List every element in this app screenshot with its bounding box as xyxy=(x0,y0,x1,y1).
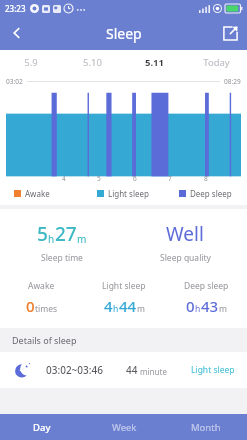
staticText: minute xyxy=(138,366,167,377)
staticText: 27 xyxy=(55,221,77,247)
staticText: Sleep time xyxy=(41,252,83,264)
staticText: Day xyxy=(33,421,51,434)
staticText: 43 xyxy=(201,296,219,316)
staticText: Light sleep xyxy=(108,188,149,199)
staticText: Awake xyxy=(28,280,55,292)
staticText: h xyxy=(113,303,119,315)
button[interactable]: Month xyxy=(165,414,247,440)
staticText: 03:02~03:46 xyxy=(46,363,103,377)
button[interactable]: 5.10 xyxy=(61,50,123,74)
button[interactable]: Day xyxy=(0,414,83,440)
staticText: 5.9 xyxy=(24,56,38,69)
staticText: 0 xyxy=(186,296,195,316)
staticText: Sleep xyxy=(106,24,142,43)
staticText: 5 xyxy=(97,174,101,183)
staticText: 7 xyxy=(168,174,172,183)
staticText: m xyxy=(137,303,145,315)
staticText: 5 xyxy=(37,221,48,247)
staticText: Deep sleep xyxy=(184,280,229,292)
staticText: 44 xyxy=(119,296,137,316)
staticText: 44 xyxy=(126,363,138,377)
staticText: 4 xyxy=(62,174,66,183)
staticText: m xyxy=(219,303,227,315)
staticText: 6 xyxy=(133,174,137,183)
staticText: 0 xyxy=(26,296,35,316)
staticText: 8 xyxy=(204,174,208,183)
staticText: 4 xyxy=(104,296,113,316)
staticText: Week xyxy=(112,421,137,434)
button[interactable]: 5.9 xyxy=(0,50,61,74)
button[interactable]: 5.11 xyxy=(123,50,185,74)
staticText: m xyxy=(77,232,87,246)
button[interactable]: Today xyxy=(185,50,247,74)
staticText: 23:23 xyxy=(5,3,26,14)
staticText: Deep sleep xyxy=(190,188,232,199)
button[interactable]: Share xyxy=(213,16,247,50)
staticText: Light sleep xyxy=(102,280,146,292)
staticText: h xyxy=(195,303,201,315)
staticText: Month xyxy=(191,421,221,434)
staticText: 08:29 xyxy=(224,77,241,86)
staticText: Light sleep xyxy=(191,364,235,376)
staticText: 03:02 xyxy=(6,77,23,86)
button[interactable]: 03:02~03:46 xyxy=(0,352,247,388)
staticText: h xyxy=(48,232,55,246)
staticText: 5.11 xyxy=(145,56,164,69)
staticText: Details of sleep xyxy=(12,334,77,346)
staticText: Awake xyxy=(25,188,50,199)
button[interactable]: Week xyxy=(83,414,165,440)
staticText: Well xyxy=(166,221,204,247)
button[interactable]: Back xyxy=(0,16,34,50)
staticText: 5.10 xyxy=(83,56,102,69)
staticText: Sleep quality xyxy=(160,252,211,264)
staticText: Today xyxy=(203,56,230,69)
staticText: times xyxy=(35,303,58,315)
